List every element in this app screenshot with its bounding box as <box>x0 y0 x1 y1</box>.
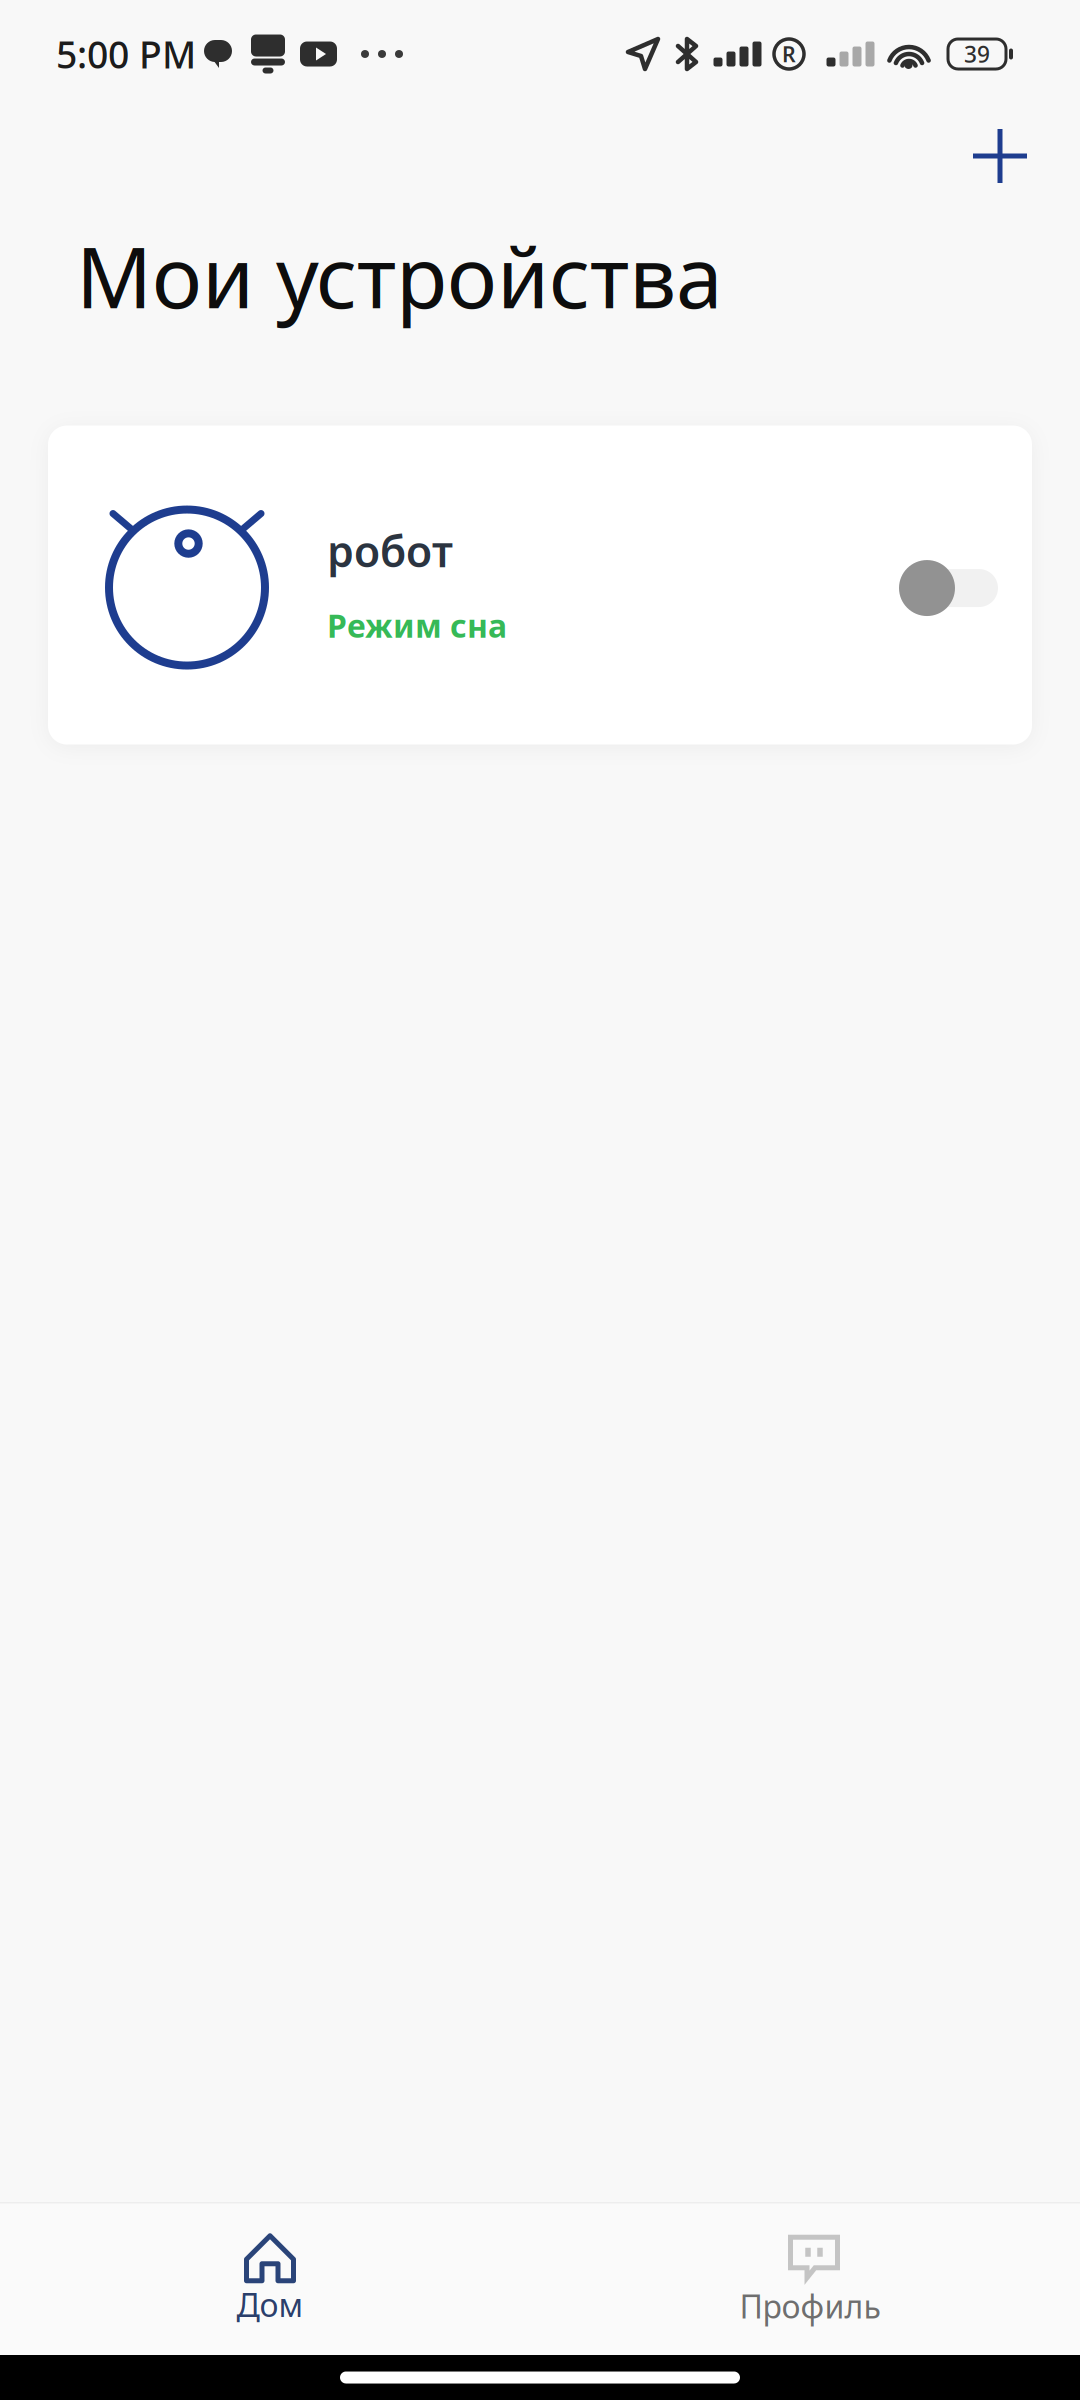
staticText: R <box>782 40 796 68</box>
button[interactable]: Add device <box>958 108 1042 198</box>
staticText: Режим сна <box>327 604 507 647</box>
staticText: робот <box>327 522 453 579</box>
staticText: Профиль <box>739 2285 880 2327</box>
button[interactable]: Дом <box>0 2202 540 2355</box>
staticText: Дом <box>236 2283 303 2326</box>
button[interactable]: робот <box>48 425 1032 744</box>
staticText: 39 <box>964 39 990 69</box>
button[interactable]: Профиль <box>540 2202 1080 2355</box>
staticText: 5:00 PM <box>56 29 196 79</box>
staticText: Мои устройства <box>76 220 723 331</box>
button[interactable]: Sleep mode toggle <box>899 554 1032 616</box>
